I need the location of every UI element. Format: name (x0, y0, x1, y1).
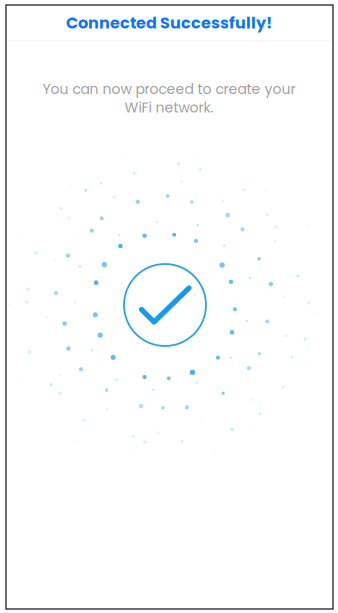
staticText: You can now proceed to create your (42, 79, 295, 99)
staticText: Connected Successfully! (66, 12, 272, 34)
staticText: WiFi network. (124, 98, 213, 117)
